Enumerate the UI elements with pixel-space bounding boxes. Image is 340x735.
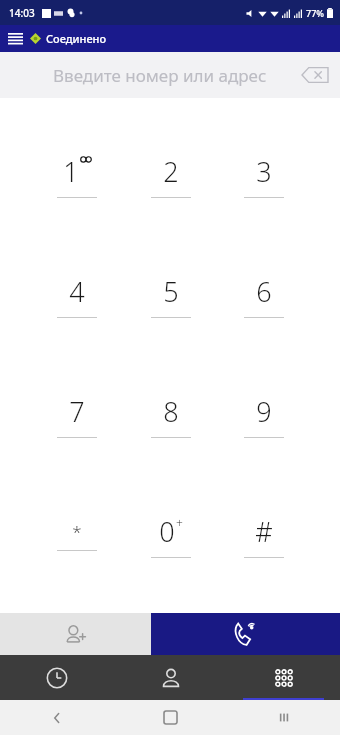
staticText: 5	[163, 273, 179, 310]
button[interactable]: Add contact	[0, 613, 151, 655]
button[interactable]: Call	[151, 613, 340, 655]
staticText: 7	[69, 393, 85, 430]
staticText: #	[255, 513, 273, 550]
staticText: 0	[159, 513, 175, 550]
button[interactable]: Home	[114, 700, 227, 735]
button[interactable]: Contacts	[114, 655, 227, 700]
staticText: 6	[256, 273, 272, 310]
button[interactable]: 4	[30, 235, 124, 355]
button[interactable]: Введите номер или адрес	[0, 52, 340, 98]
button[interactable]: 7	[30, 355, 124, 475]
button[interactable]: #	[217, 475, 310, 595]
staticText: 77%	[306, 7, 324, 19]
button[interactable]: *	[30, 475, 124, 595]
staticText: +	[176, 515, 183, 531]
button[interactable]: Recents	[0, 655, 114, 700]
staticText: 8	[163, 393, 179, 430]
staticText: 2	[163, 153, 179, 190]
button[interactable]: 2	[124, 116, 217, 235]
staticText: 3	[256, 153, 272, 190]
button[interactable]: 6	[217, 235, 310, 355]
staticText: *	[72, 520, 82, 543]
staticText: Соединено	[46, 31, 107, 46]
button[interactable]: 5	[124, 235, 217, 355]
button[interactable]: 8	[124, 355, 217, 475]
button[interactable]: Menu	[0, 25, 30, 52]
button[interactable]: 3	[217, 116, 310, 235]
staticText: 14:03	[9, 6, 35, 20]
button[interactable]: Keypad	[227, 655, 340, 700]
button[interactable]: Recents	[227, 700, 340, 735]
button[interactable]: 0	[124, 475, 217, 595]
button[interactable]: 9	[217, 355, 310, 475]
staticText: 4	[69, 273, 85, 310]
staticText: 9	[256, 393, 272, 430]
staticText: Введите номер или адрес	[53, 64, 267, 87]
button[interactable]: Backspace	[298, 58, 332, 92]
button[interactable]: 1	[30, 116, 124, 235]
button[interactable]: Back	[0, 700, 114, 735]
staticText: 1	[63, 153, 79, 190]
